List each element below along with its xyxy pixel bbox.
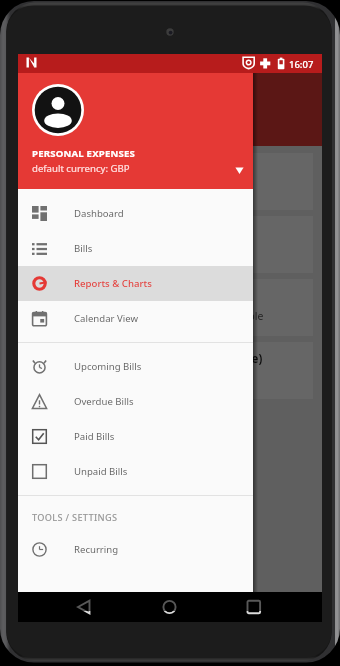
staticText: Paid Bills [74,430,115,443]
staticText: this is a short reminder description for… [37,246,246,260]
staticText: 16:07 [289,58,314,71]
staticText: default currency: GBP [32,162,130,175]
staticText: this is a short reminder description of [37,372,223,386]
button[interactable]: Bills [18,231,253,266]
button[interactable]: Internet and phone line (payable) [27,279,313,336]
staticText: Bills [74,242,93,255]
staticText: Reports & Charts [74,277,152,290]
button[interactable]: Monthly rent payment for flat [27,153,313,210]
staticText: Overdue Bills [74,395,134,408]
staticText: this is a short reminder description of … [37,309,264,323]
button[interactable]: Salary payment from office (receivable) [27,342,313,399]
button[interactable]: Switch profile [227,163,253,189]
staticText: Unpaid Bills [74,465,128,478]
button[interactable]: Upcoming Bills [18,349,253,384]
staticText: Upcoming Bills [74,360,142,373]
button[interactable]: Calendar View [18,301,253,336]
button[interactable]: Electricity quarterly bill (payable) [27,216,313,273]
button[interactable]: Reports & Charts [18,266,253,301]
staticText: Calendar View [74,312,138,325]
staticText: Dashboard [74,207,124,220]
staticText: Monthly rent payment for flat [37,162,210,178]
button[interactable]: Paid Bills [18,419,253,454]
staticText: TOOLS / SETTINGS [32,511,118,524]
button[interactable]: Dashboard [18,196,253,231]
staticText: PERSONAL EXPENSES [32,147,136,160]
staticText: Recurring [74,543,119,556]
button[interactable]: Unpaid Bills [18,454,253,489]
staticText: Internet and phone line (payable) [37,288,230,304]
button[interactable]: Overdue Bills [18,384,253,419]
staticText: this is a short reminder description for… [37,183,246,197]
staticText: Salary payment from office (receivable) [37,351,263,367]
button[interactable]: Recurring [18,532,253,567]
